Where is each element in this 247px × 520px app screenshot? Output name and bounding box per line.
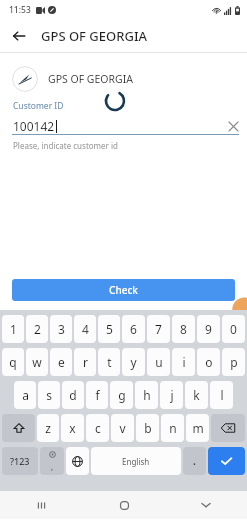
staticText: 7 <box>155 321 162 337</box>
staticText: Please, indicate customer id <box>13 140 118 151</box>
button[interactable]: Period <box>183 447 206 475</box>
button[interactable]: z <box>37 414 59 442</box>
staticText: a <box>22 387 29 403</box>
button[interactable]: 1 <box>2 315 24 343</box>
button[interactable]: a <box>14 381 36 409</box>
staticText: l <box>220 387 224 403</box>
button[interactable]: g <box>110 381 133 409</box>
staticText: e <box>58 354 65 370</box>
button[interactable]: c <box>86 414 109 442</box>
staticText: h <box>143 387 151 403</box>
button[interactable]: 6 <box>122 315 145 343</box>
button[interactable]: 5 <box>98 315 120 343</box>
button[interactable]: w <box>26 348 48 376</box>
staticText: o <box>205 354 213 370</box>
staticText: b <box>144 420 152 436</box>
button[interactable]: v <box>111 414 134 442</box>
staticText: 5 <box>106 321 113 337</box>
staticText: f <box>95 387 100 403</box>
button[interactable]: s <box>38 381 60 409</box>
staticText: z <box>45 420 51 436</box>
staticText: 11:53 <box>9 4 31 16</box>
staticText: r <box>83 354 88 370</box>
staticText: t <box>107 354 112 370</box>
staticText: n <box>169 420 177 436</box>
button[interactable]: p <box>222 348 245 376</box>
staticText: 4 <box>82 321 89 337</box>
staticText: i <box>182 354 186 370</box>
staticText: GPS OF GEORGIA <box>41 27 148 45</box>
button[interactable]: q <box>2 348 24 376</box>
button[interactable]: u <box>147 348 170 376</box>
staticText: g <box>118 387 126 403</box>
button[interactable]: Backspace <box>211 414 245 442</box>
button[interactable]: Recents <box>0 491 83 519</box>
staticText: c <box>95 420 101 436</box>
button[interactable]: y <box>122 348 145 376</box>
button[interactable]: Clear <box>223 118 243 134</box>
button[interactable]: b <box>136 414 159 442</box>
button[interactable]: n <box>161 414 184 442</box>
button[interactable]: e <box>50 348 72 376</box>
button[interactable]: 0 <box>222 315 245 343</box>
staticText: 0 <box>230 321 237 337</box>
button[interactable]: o <box>197 348 220 376</box>
staticText: 6 <box>130 321 137 337</box>
button[interactable]: h <box>135 381 158 409</box>
staticText: y <box>130 354 137 370</box>
staticText: English <box>122 456 150 467</box>
staticText: 100142 <box>13 118 55 134</box>
staticText: 1 <box>10 321 17 337</box>
staticText: p <box>230 354 238 370</box>
staticText: ?123 <box>10 455 30 467</box>
button[interactable]: m <box>186 414 209 442</box>
staticText: 2 <box>34 321 41 337</box>
button[interactable]: 8 <box>172 315 195 343</box>
staticText: u <box>155 354 163 370</box>
staticText: . <box>193 454 196 468</box>
button[interactable]: 3 <box>50 315 72 343</box>
button[interactable]: Symbols <box>2 447 38 475</box>
staticText: , <box>51 461 54 472</box>
button[interactable]: r <box>74 348 96 376</box>
button[interactable]: 9 <box>197 315 220 343</box>
button[interactable]: 7 <box>147 315 170 343</box>
staticText: j <box>170 387 174 403</box>
button[interactable]: Settings and comma <box>40 447 64 475</box>
button[interactable]: x <box>61 414 84 442</box>
staticText: m <box>192 420 204 436</box>
button[interactable]: i <box>172 348 195 376</box>
button[interactable]: 4 <box>74 315 96 343</box>
button[interactable]: f <box>86 381 108 409</box>
staticText: 9 <box>205 321 212 337</box>
staticText: v <box>119 420 126 436</box>
staticText: x <box>69 420 76 436</box>
button[interactable]: k <box>185 381 208 409</box>
staticText: k <box>193 387 200 403</box>
staticText: d <box>69 387 77 403</box>
button[interactable]: Check <box>12 279 235 301</box>
staticText: Check <box>109 283 138 297</box>
button[interactable]: Back <box>165 491 247 519</box>
button[interactable]: l <box>210 381 233 409</box>
button[interactable]: j <box>160 381 183 409</box>
staticText: s <box>46 387 52 403</box>
button[interactable]: d <box>62 381 84 409</box>
staticText: GPS OF GEORGIA <box>48 72 133 86</box>
button[interactable]: Back <box>6 23 32 49</box>
button[interactable]: t <box>98 348 120 376</box>
button[interactable]: 2 <box>26 315 48 343</box>
button[interactable]: English <box>91 447 181 475</box>
button[interactable]: Home <box>83 491 165 519</box>
staticText: 3 <box>58 321 65 337</box>
staticText: 8 <box>180 321 187 337</box>
button[interactable]: Change language <box>66 447 89 475</box>
button[interactable]: Enter <box>208 447 245 475</box>
staticText: w <box>32 354 42 370</box>
button[interactable]: Shift <box>2 414 35 442</box>
staticText: q <box>9 354 17 370</box>
staticText: Customer ID <box>13 100 64 112</box>
